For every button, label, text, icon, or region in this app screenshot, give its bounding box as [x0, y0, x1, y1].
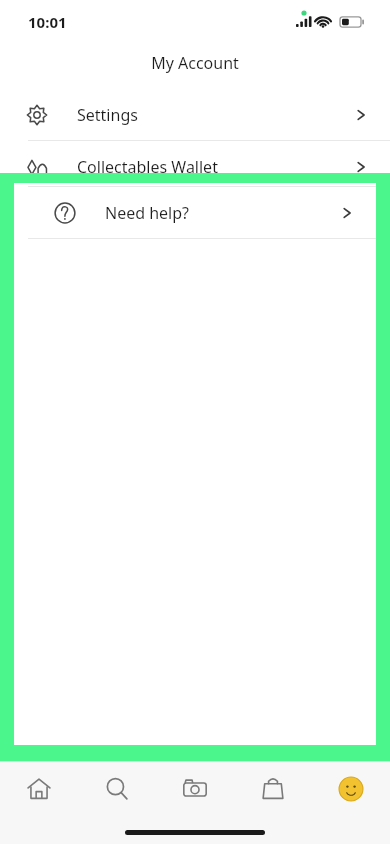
button[interactable]: Home	[0, 762, 78, 816]
staticText: Collectables Wallet	[77, 156, 218, 178]
staticText: Need help?	[77, 208, 162, 230]
button[interactable]: Shopping bag	[234, 762, 312, 816]
staticText: Need help?	[105, 202, 190, 224]
staticText: 10:01	[28, 12, 67, 32]
button[interactable]: Collectables Wallet	[0, 141, 390, 192]
button[interactable]: Settings	[0, 89, 390, 140]
button[interactable]: Profile	[312, 762, 390, 816]
button[interactable]: Need help?	[14, 187, 376, 238]
staticText: My Account	[151, 52, 239, 74]
button[interactable]: Search	[78, 762, 156, 816]
button[interactable]: Need help?	[0, 193, 390, 244]
button[interactable]: Camera	[156, 762, 234, 816]
staticText: Settings	[77, 104, 138, 126]
